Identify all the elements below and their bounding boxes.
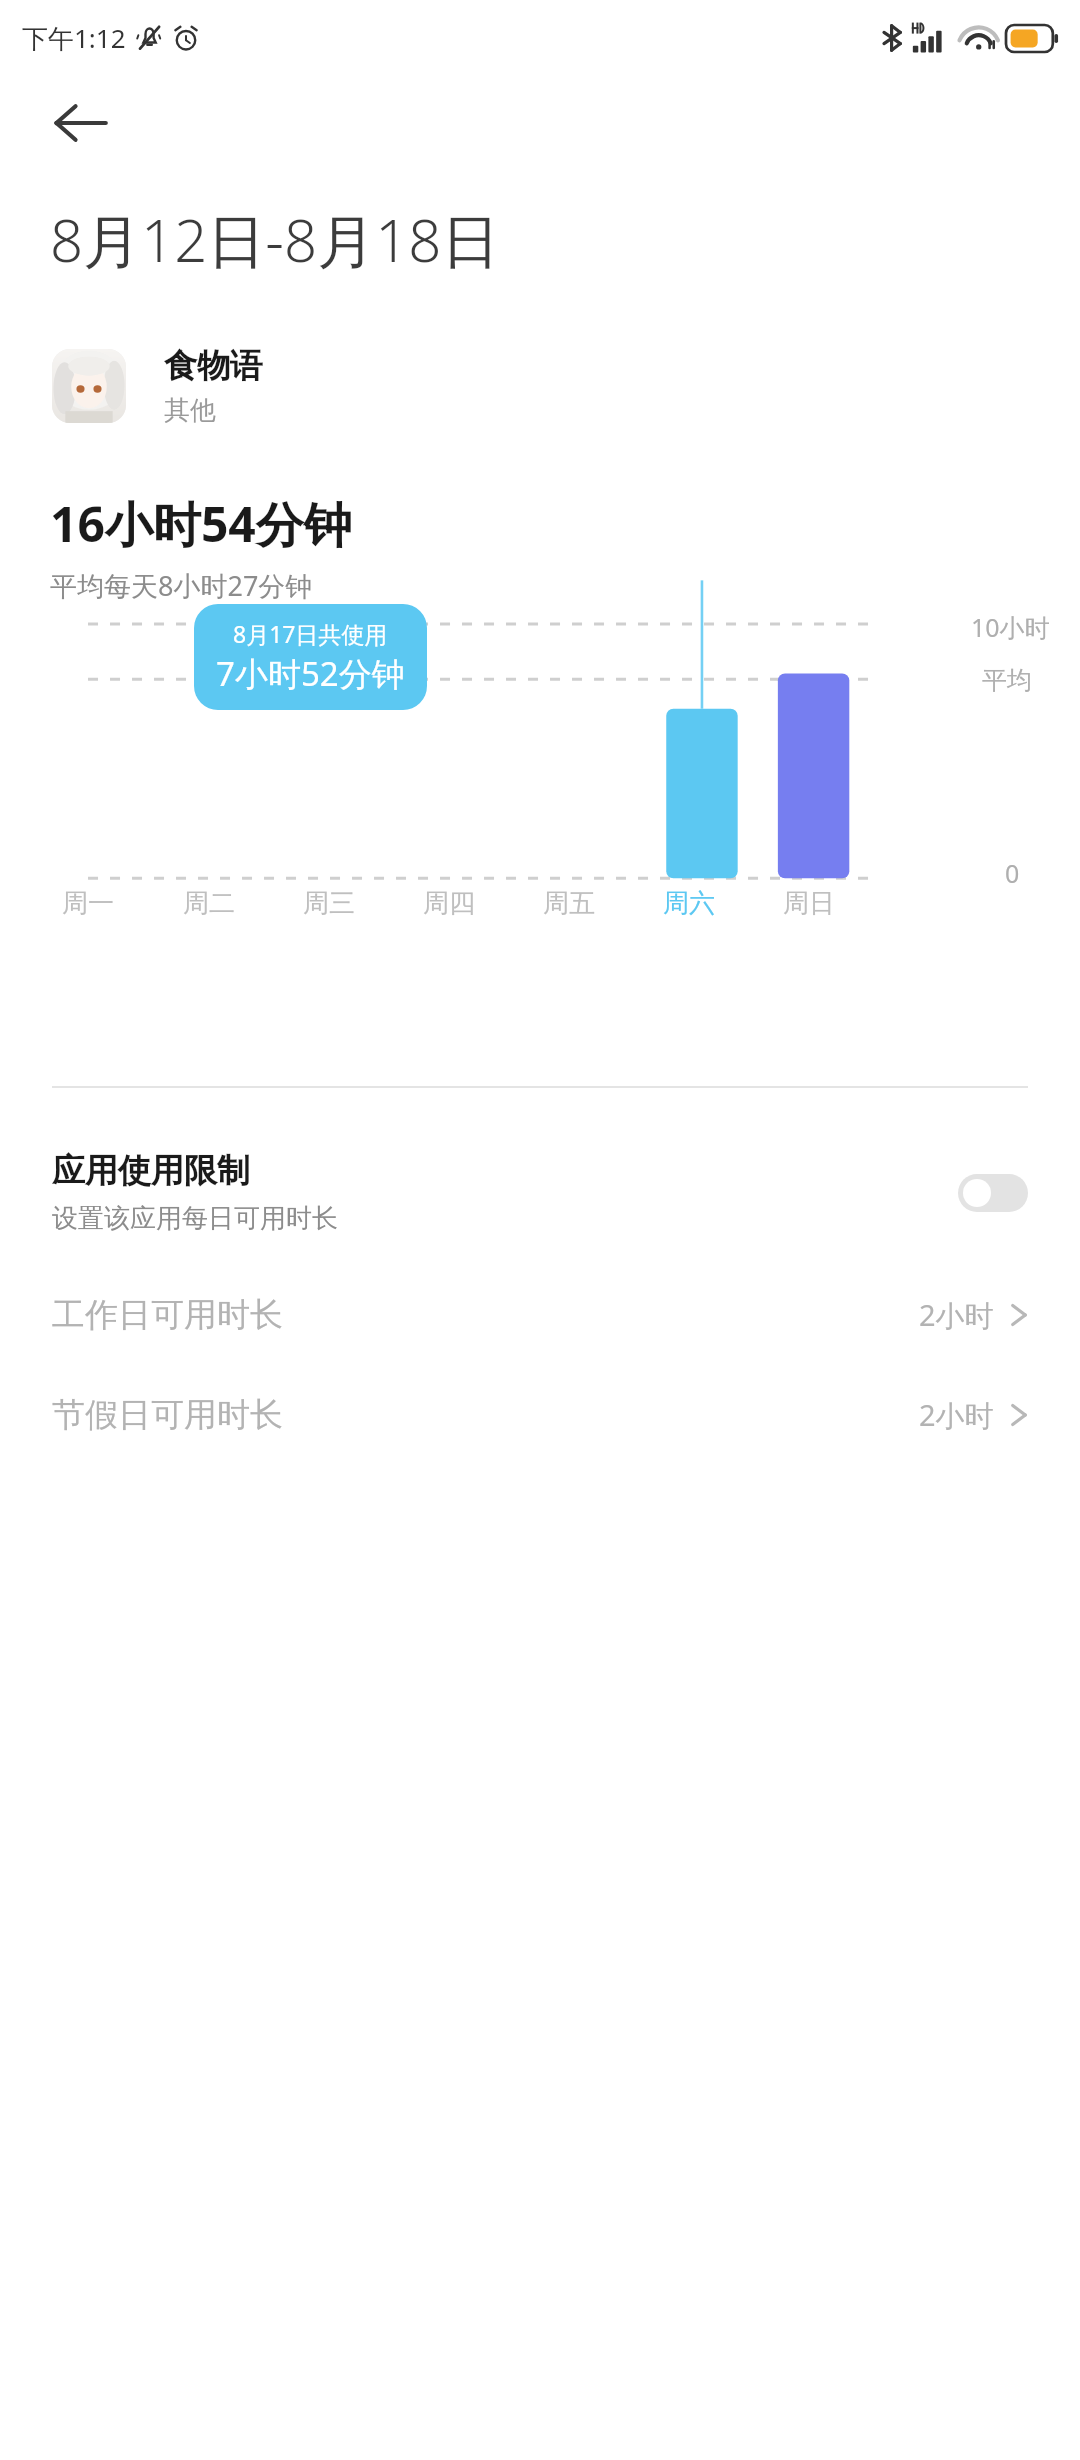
button[interactable]: 8月17日共使用 bbox=[194, 604, 427, 710]
button[interactable]: 食物语 bbox=[0, 339, 1080, 433]
staticText: 周日 bbox=[783, 887, 835, 920]
staticText: 周二 bbox=[183, 887, 235, 920]
staticText: 应用使用限制 bbox=[52, 1150, 250, 1192]
staticText: 周四 bbox=[423, 887, 475, 920]
staticText: 8月12日-8月18日 bbox=[50, 200, 500, 279]
button[interactable]: 节假日可用时长 bbox=[0, 1365, 1080, 1465]
staticText: 周六 bbox=[663, 887, 715, 920]
staticText: 下午1:12 bbox=[22, 20, 126, 56]
staticText: 周一 bbox=[62, 887, 114, 920]
button[interactable]: App usage limit toggle bbox=[958, 1174, 1028, 1212]
button[interactable]: 工作日可用时长 bbox=[0, 1265, 1080, 1365]
staticText: 16小时54分钟 bbox=[50, 491, 352, 557]
staticText: 食物语 bbox=[164, 345, 263, 387]
staticText: 7小时52分钟 bbox=[216, 651, 405, 696]
staticText: 0 bbox=[1005, 856, 1020, 890]
staticText: 工作日可用时长 bbox=[52, 1294, 919, 1336]
staticText: 8月17日共使用 bbox=[233, 618, 388, 649]
staticText: 平均 bbox=[982, 665, 1032, 696]
staticText: 设置该应用每日可用时长 bbox=[52, 1202, 338, 1235]
staticText: 2小时 bbox=[919, 1295, 994, 1335]
staticText: 周三 bbox=[303, 887, 355, 920]
staticText: 周五 bbox=[543, 887, 595, 920]
button[interactable]: Back bbox=[52, 95, 108, 151]
staticText: 2小时 bbox=[919, 1395, 994, 1435]
staticText: 其他 bbox=[164, 394, 216, 427]
staticText: 平均每天8小时27分钟 bbox=[50, 567, 313, 604]
staticText: 10小时 bbox=[971, 610, 1050, 644]
staticText: 节假日可用时长 bbox=[52, 1394, 919, 1436]
button[interactable]: 应用使用限制 bbox=[0, 1088, 1080, 1265]
